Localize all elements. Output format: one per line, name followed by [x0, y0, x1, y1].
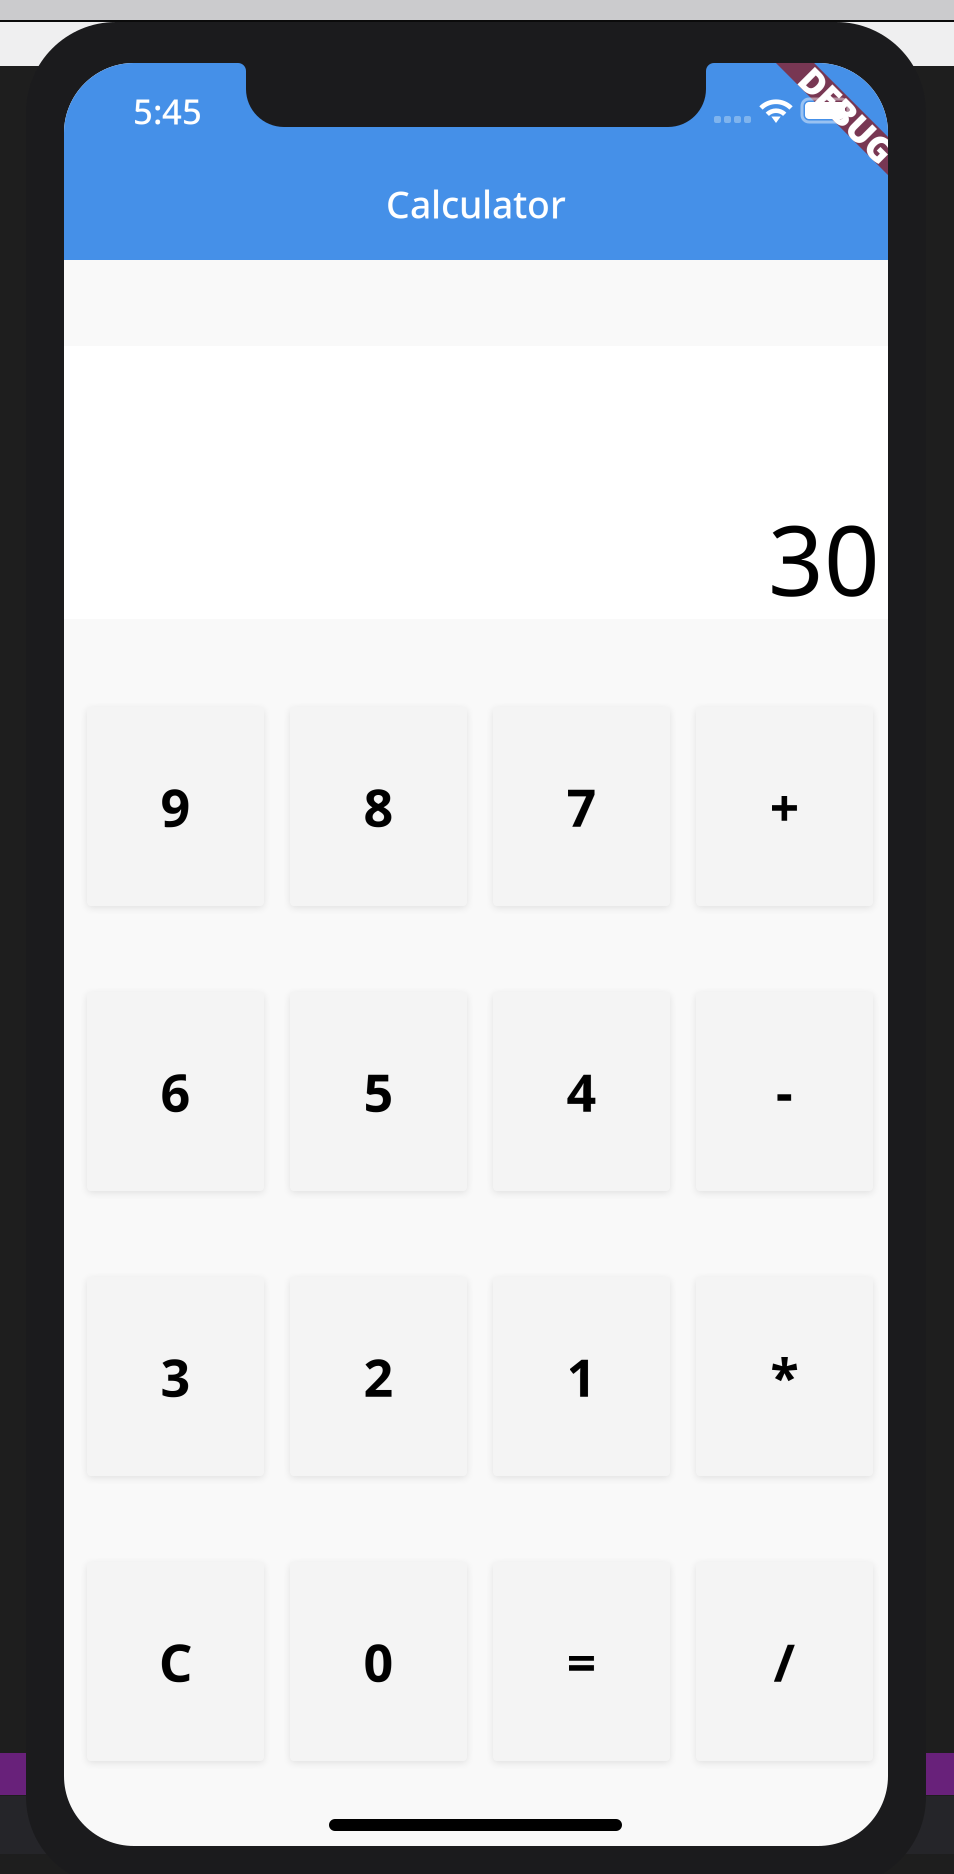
staticText: 6 — [160, 1057, 190, 1126]
button[interactable]: C — [87, 1562, 264, 1761]
staticText: C — [159, 1627, 192, 1696]
button[interactable]: / — [696, 1562, 873, 1761]
button[interactable]: 1 — [493, 1277, 670, 1476]
staticText: 1 — [566, 1342, 596, 1411]
button[interactable]: * — [696, 1277, 873, 1476]
button[interactable]: 7 — [493, 707, 670, 906]
button[interactable]: + — [696, 707, 873, 906]
staticText: + — [769, 772, 799, 841]
staticText: 30 — [768, 493, 880, 623]
button[interactable]: = — [493, 1562, 670, 1761]
staticText: 2 — [363, 1342, 393, 1411]
staticText: * — [770, 1342, 798, 1411]
button[interactable]: 5 — [290, 992, 467, 1191]
button[interactable]: 3 — [87, 1277, 264, 1476]
button[interactable]: 9 — [87, 707, 264, 906]
staticText: 5:45 — [133, 88, 202, 134]
staticText: 4 — [566, 1057, 596, 1126]
staticText: - — [776, 1057, 793, 1126]
button[interactable]: - — [696, 992, 873, 1191]
staticText: / — [773, 1627, 795, 1696]
staticText: 8 — [363, 772, 393, 841]
button[interactable]: 2 — [290, 1277, 467, 1476]
staticText: 7 — [566, 772, 596, 841]
staticText: DEBUG — [787, 92, 906, 138]
staticText: 0 — [363, 1627, 393, 1696]
button[interactable]: 4 — [493, 992, 670, 1191]
button[interactable]: 8 — [290, 707, 467, 906]
staticText: 3 — [160, 1342, 190, 1411]
staticText: Calculator — [386, 179, 566, 229]
staticText: 5 — [363, 1057, 393, 1126]
button[interactable]: 6 — [87, 992, 264, 1191]
staticText: = — [566, 1627, 596, 1696]
staticText: 9 — [160, 772, 190, 841]
button[interactable]: 0 — [290, 1562, 467, 1761]
